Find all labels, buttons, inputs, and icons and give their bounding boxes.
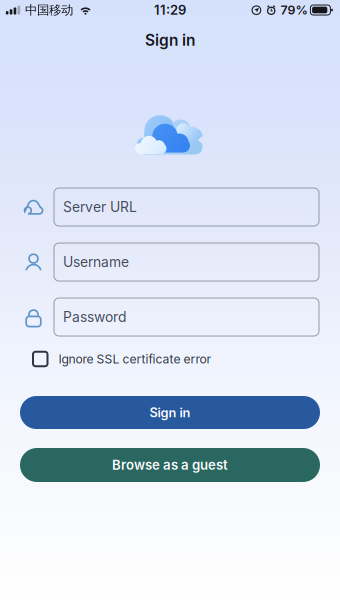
button[interactable]: Browse as a guest bbox=[20, 448, 320, 482]
staticText: Sign in bbox=[145, 31, 195, 49]
button[interactable]: Sign in bbox=[20, 396, 320, 429]
staticText: Server URL bbox=[63, 199, 137, 215]
staticText: 中国移动 bbox=[25, 2, 73, 18]
button[interactable]: Ignore SSL certificate error bbox=[33, 347, 307, 371]
staticText: 79% bbox=[280, 2, 307, 17]
staticText: Ignore SSL certificate error bbox=[58, 352, 211, 366]
staticText: Password bbox=[63, 309, 126, 325]
staticText: Username bbox=[63, 254, 129, 270]
staticText: 11:29 bbox=[154, 2, 186, 18]
staticText: Browse as a guest bbox=[112, 457, 228, 473]
staticText: Sign in bbox=[149, 405, 190, 420]
